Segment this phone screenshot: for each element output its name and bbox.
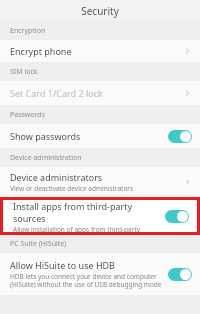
button[interactable]: Device administrators	[0, 167, 200, 197]
staticText: Set Card 1/Card 2 lock	[10, 87, 103, 99]
staticText: Device administrators	[10, 171, 103, 183]
button[interactable]: Show passwords	[0, 124, 200, 148]
staticText: Passwords	[10, 110, 46, 120]
button[interactable]: Allow HiSuite to use HDB	[0, 253, 200, 295]
staticText: HDB lets you connect your device and com…	[10, 272, 162, 289]
staticText: Security	[81, 4, 119, 18]
staticText: Show passwords	[10, 130, 81, 142]
button[interactable]: Toggle, on	[165, 210, 189, 223]
button[interactable]: Toggle, on	[168, 130, 192, 143]
button[interactable]: Set Card 1/Card 2 lock	[0, 81, 200, 105]
button[interactable]: Install apps from third-party sources	[3, 200, 197, 232]
staticText: Install apps from third-party sources	[13, 200, 165, 224]
staticText: SIM lock	[10, 67, 38, 77]
button[interactable]: Toggle, on	[168, 268, 192, 281]
staticText: Encrypt phone	[10, 45, 72, 57]
staticText: Encryption	[10, 26, 46, 36]
button[interactable]: Encrypt phone	[0, 40, 200, 62]
staticText: Allow installation of apps from third-pa…	[13, 225, 165, 232]
staticText: Allow HiSuite to use HDB	[10, 259, 115, 271]
staticText: PC Suite (HiSuite)	[10, 239, 67, 249]
staticText: View or deactivate device administrators	[10, 184, 134, 193]
staticText: Device administration	[10, 153, 82, 163]
